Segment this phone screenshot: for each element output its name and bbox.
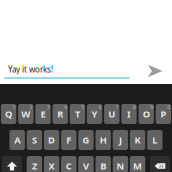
staticText: 9 xyxy=(150,104,153,111)
button[interactable]: V xyxy=(78,156,94,172)
button[interactable]: X xyxy=(44,156,59,172)
staticText: O xyxy=(143,108,150,120)
button[interactable]: L xyxy=(147,130,162,150)
button[interactable]: S xyxy=(27,130,42,150)
button[interactable]: H xyxy=(95,130,111,150)
staticText: 1 xyxy=(12,104,15,111)
staticText: I xyxy=(127,108,131,120)
staticText: G xyxy=(82,134,89,146)
button[interactable]: G xyxy=(78,130,94,150)
button[interactable]: B xyxy=(95,156,111,172)
staticText: W xyxy=(21,108,30,120)
staticText: 3 xyxy=(47,104,50,111)
staticText: Q xyxy=(5,108,12,120)
button[interactable]: M xyxy=(130,156,145,172)
staticText: L xyxy=(152,134,157,146)
button[interactable]: P xyxy=(156,104,171,124)
staticText: M xyxy=(133,160,142,172)
button[interactable]: C xyxy=(61,156,76,172)
staticText: X xyxy=(49,160,55,172)
staticText: Y xyxy=(92,108,98,120)
staticText: 8 xyxy=(133,104,136,111)
staticText: P xyxy=(160,108,166,120)
staticText: T xyxy=(75,108,80,120)
button[interactable]: A xyxy=(9,130,25,150)
staticText: B xyxy=(100,160,106,172)
staticText: 5 xyxy=(81,104,84,111)
staticText: 0 xyxy=(167,104,170,111)
button[interactable]: F xyxy=(61,130,76,150)
button[interactable]: Delete xyxy=(150,156,170,172)
staticText: 7 xyxy=(116,104,119,111)
staticText: H xyxy=(100,134,107,146)
staticText: F xyxy=(66,134,71,146)
button[interactable]: E xyxy=(35,104,51,124)
button[interactable]: Q xyxy=(1,104,16,124)
button[interactable]: R xyxy=(52,104,68,124)
staticText: C xyxy=(66,160,72,172)
staticText: N xyxy=(116,160,124,172)
button[interactable]: I xyxy=(121,104,137,124)
staticText: Z xyxy=(32,160,37,172)
staticText: V xyxy=(83,160,89,172)
button[interactable]: Y xyxy=(87,104,102,124)
staticText: 4 xyxy=(64,104,67,111)
staticText: 6 xyxy=(98,104,101,111)
button[interactable]: O xyxy=(138,104,154,124)
button[interactable]: W xyxy=(18,104,33,124)
button[interactable]: Shift xyxy=(2,156,22,172)
staticText: S xyxy=(32,134,37,146)
staticText: J xyxy=(119,134,122,146)
button[interactable]: T xyxy=(70,104,85,124)
staticText: A xyxy=(14,134,20,146)
button[interactable]: K xyxy=(130,130,145,150)
staticText: K xyxy=(135,134,141,146)
button[interactable]: J xyxy=(113,130,128,150)
button[interactable]: U xyxy=(104,104,119,124)
staticText: E xyxy=(40,108,45,120)
staticText: Yay it works! xyxy=(8,64,53,75)
staticText: U xyxy=(108,108,115,120)
button[interactable]: Send xyxy=(143,59,167,83)
staticText: D xyxy=(48,134,55,146)
button[interactable]: D xyxy=(44,130,59,150)
button[interactable]: Z xyxy=(27,156,42,172)
staticText: R xyxy=(57,108,63,120)
button[interactable]: N xyxy=(113,156,128,172)
staticText: 2 xyxy=(30,104,33,111)
